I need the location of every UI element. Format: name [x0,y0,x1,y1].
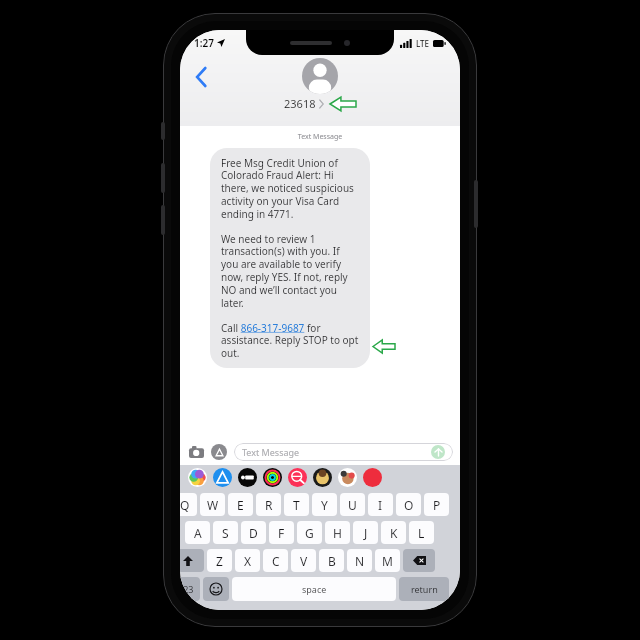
button[interactable]: C [263,549,288,572]
button[interactable]: App [288,468,307,487]
staticText: T [293,497,300,513]
staticText: O [404,497,414,513]
staticText: I [378,497,383,513]
staticText: G [305,525,314,541]
staticText: D [249,525,258,541]
staticText: F [278,525,285,541]
button[interactable]: Key [180,549,204,572]
staticText: U [348,497,357,513]
button[interactable]: D [241,521,266,544]
staticText: L [418,525,425,541]
button[interactable]: App [313,468,332,487]
button[interactable]: W [200,493,225,516]
staticText: 123 [180,583,194,595]
staticText: E [237,497,244,513]
staticText: V [300,553,308,569]
staticText: 23618 [284,96,316,111]
button[interactable]: App [263,468,282,487]
staticText: N [355,553,365,569]
staticText: C [272,553,280,569]
button[interactable]: K [381,521,406,544]
button[interactable]: O [396,493,421,516]
button[interactable]: space [232,577,396,601]
button[interactable]: Key [180,577,200,601]
button[interactable]: Apps [211,444,227,460]
staticText: B [328,553,336,569]
staticText: X [244,553,252,569]
button[interactable]: X [235,549,260,572]
button[interactable]: B [319,549,344,572]
staticText: Call 866-317-9687 for assistance. Reply … [221,321,359,360]
staticText: Free Msg Credit Union of Colorado Fraud … [221,156,359,221]
button[interactable]: Free Msg Credit Union of Colorado Fraud … [210,148,370,368]
button[interactable]: E [228,493,253,516]
button[interactable]: Y [312,493,337,516]
button[interactable]: U [340,493,365,516]
staticText: H [333,525,342,541]
button[interactable]: Camera [187,443,205,461]
button[interactable]: V [291,549,316,572]
button[interactable]: R [256,493,281,516]
button[interactable]: App [213,468,232,487]
button[interactable]: H [325,521,350,544]
button[interactable]: App [238,468,257,487]
staticText: Q [180,497,190,513]
button[interactable]: Send [431,445,445,459]
staticText: P [433,497,441,513]
staticText: A [194,525,202,541]
staticText: Text Message [180,132,460,142]
staticText: Y [321,497,328,513]
staticText: M [382,553,393,569]
button[interactable]: L [409,521,434,544]
button[interactable]: A [185,521,210,544]
button[interactable]: Key [403,549,435,572]
staticText: J [364,525,368,541]
button[interactable]: S [213,521,238,544]
button[interactable]: J [353,521,378,544]
staticText: space [302,583,327,595]
button[interactable]: App [363,468,382,487]
button[interactable]: App [188,468,207,487]
staticText: We need to review 1 transaction(s) with … [221,232,359,310]
button[interactable]: Text Message [234,443,453,461]
button[interactable]: Key [203,577,229,601]
staticText: Text Message [242,446,300,458]
staticText: S [222,525,229,541]
button[interactable]: Q [180,493,197,516]
staticText: return [411,583,438,595]
button[interactable]: M [375,549,400,572]
button[interactable]: N [347,549,372,572]
button[interactable]: Back [186,62,216,92]
button[interactable]: I [368,493,393,516]
staticText: Z [216,553,223,569]
staticText: W [207,497,219,513]
staticText: LTE [416,38,430,49]
button[interactable]: Z [207,549,232,572]
staticText: K [390,525,398,541]
button[interactable]: return [399,577,449,601]
button[interactable]: T [284,493,309,516]
button[interactable]: F [269,521,294,544]
button[interactable]: App [338,468,357,487]
button[interactable]: P [424,493,449,516]
staticText: 1:27 [194,36,214,50]
button[interactable]: G [297,521,322,544]
button[interactable]: 23618 [284,58,356,111]
staticText: R [265,497,273,513]
